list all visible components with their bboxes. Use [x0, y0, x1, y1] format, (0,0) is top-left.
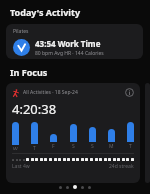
- staticText: T: [33, 145, 36, 150]
- staticText: F: [52, 143, 55, 150]
- staticText: W: [13, 146, 18, 150]
- staticText: M: [109, 143, 114, 150]
- staticText: All Activities · 18 Sep-24: [23, 89, 78, 96]
- staticText: Last 4w: [12, 163, 30, 170]
- staticText: 80 bpm Avg HR · 144 Calories: [35, 50, 104, 57]
- other: Pilates workout: [13, 39, 30, 56]
- button[interactable]: Pilates: [6, 24, 143, 59]
- staticText: Today's Activity: [10, 6, 81, 18]
- staticText: S: [91, 143, 94, 150]
- staticText: T: [129, 143, 132, 150]
- staticText: In Focus: [10, 66, 48, 78]
- staticText: Pilates: [13, 28, 29, 35]
- button[interactable]: All Activities · 18 Sep-24: [6, 83, 140, 183]
- staticText: 43:54 Work Time: [35, 38, 101, 49]
- staticText: 24d streak: [109, 163, 134, 170]
- button[interactable]: Info: [125, 88, 134, 97]
- staticText: S: [72, 143, 75, 150]
- staticText: 4:20:38: [12, 100, 57, 118]
